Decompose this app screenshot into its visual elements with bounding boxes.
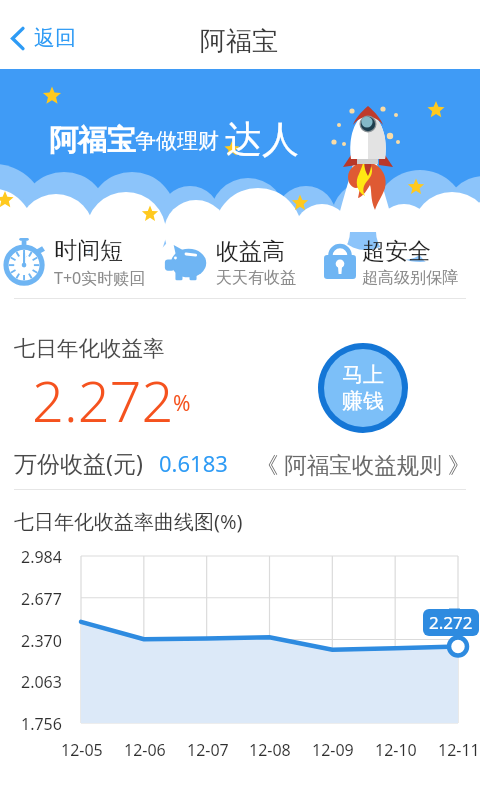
staticText: 2.370 [21, 630, 62, 652]
staticText: 七日年化收益率曲线图(%) [14, 508, 243, 535]
staticText: 12-11 [438, 739, 480, 761]
staticText: 马上 [342, 362, 384, 388]
staticText: 阿福宝 [200, 25, 278, 58]
staticText: T+0实时赎回 [54, 267, 146, 288]
staticText: 争做理财 [135, 128, 219, 154]
staticText: % [173, 389, 191, 418]
staticText: 12-07 [187, 739, 229, 761]
staticText: 2.984 [21, 546, 62, 568]
staticText: 0.6183 [159, 448, 228, 478]
staticText: 超安全 [362, 237, 431, 266]
staticText: 阿福宝 [49, 122, 136, 159]
staticText: 七日年化收益率 [14, 335, 165, 362]
staticText: 2.677 [21, 588, 62, 610]
staticText: 2.063 [21, 671, 62, 693]
staticText: 万份收益(元) [14, 447, 143, 478]
staticText: 2.272 [32, 362, 174, 438]
staticText: 12-09 [312, 739, 354, 761]
other: 超安全 [324, 245, 356, 279]
staticText: 达人 [225, 116, 299, 163]
button[interactable]: 返回 [4, 16, 84, 54]
staticText: 收益高 [216, 237, 285, 266]
staticText: 赚钱 [342, 388, 384, 414]
staticText: 超高级别保障 [362, 268, 458, 288]
staticText: 12-08 [249, 739, 291, 761]
button[interactable]: 《 阿福宝收益规则 》 [256, 449, 471, 480]
button[interactable]: 收益高 [164, 236, 296, 288]
button[interactable]: 时间短 [6, 236, 146, 288]
staticText: 天天有收益 [216, 268, 296, 288]
button[interactable]: 超安全 [324, 236, 458, 288]
staticText: 1.756 [21, 713, 62, 735]
staticText: 12-06 [124, 739, 166, 761]
staticText: 12-10 [375, 739, 417, 761]
staticText: 返回 [34, 25, 76, 51]
staticText: 时间短 [54, 236, 123, 265]
staticText: 12-05 [61, 739, 103, 761]
other: 收益高 [164, 244, 208, 281]
other: 时间短 [6, 238, 44, 286]
staticText: 2.272 [429, 611, 473, 634]
button[interactable]: 马上 [324, 349, 402, 427]
